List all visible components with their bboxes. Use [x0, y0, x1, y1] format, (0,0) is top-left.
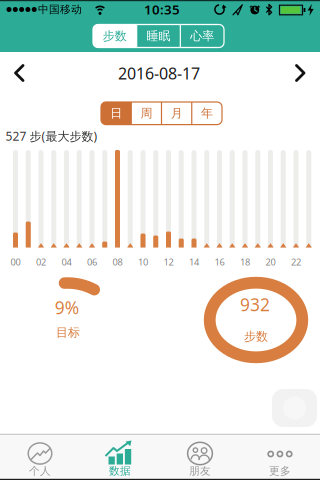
staticText: 数据	[109, 464, 131, 477]
staticText: 16	[214, 256, 224, 268]
button[interactable]: 周	[131, 102, 161, 125]
staticText: 9%	[55, 296, 79, 319]
staticText: 年	[201, 106, 213, 121]
button[interactable]: 数据	[80, 434, 160, 479]
staticText: 22	[291, 256, 301, 268]
staticText: 10:35	[144, 0, 180, 18]
staticText: 目标	[56, 325, 80, 340]
staticText: 14	[189, 256, 199, 268]
staticText: 20	[265, 256, 275, 268]
staticText: 心率	[190, 29, 214, 43]
staticText: 睡眠	[146, 29, 170, 43]
button[interactable]: 日	[101, 102, 131, 125]
staticText: 步数	[244, 329, 268, 344]
button[interactable]	[289, 62, 311, 84]
button[interactable]: 心率	[180, 24, 224, 47]
staticText: 10	[138, 256, 148, 268]
staticText: 日	[110, 106, 122, 121]
staticText: 个人	[29, 464, 51, 477]
staticText: 月	[171, 106, 183, 121]
staticText: 527 步(最大步数)	[5, 128, 97, 144]
button[interactable]: 个人	[0, 434, 80, 479]
staticText: 18	[240, 256, 250, 268]
staticText: 更多	[269, 464, 291, 477]
staticText: 00	[10, 256, 20, 268]
staticText: 08	[112, 256, 122, 268]
staticText: 步数	[103, 29, 127, 43]
staticText: 12	[163, 256, 173, 268]
staticText: 周	[140, 106, 152, 121]
button[interactable]: 更多	[240, 434, 320, 479]
staticText: 932	[240, 293, 270, 316]
button[interactable]: 朋友	[160, 434, 240, 479]
staticText: 06	[87, 256, 97, 268]
staticText: 中国移动	[38, 3, 82, 16]
button[interactable]: 步数	[93, 24, 137, 47]
staticText: 04	[61, 256, 71, 268]
staticText: 2016-08-17	[118, 63, 200, 84]
button[interactable]	[272, 389, 317, 427]
button[interactable]: 月	[161, 102, 192, 125]
button[interactable]: 年	[192, 102, 222, 125]
staticText: 朋友	[189, 464, 211, 477]
button[interactable]: 睡眠	[137, 24, 180, 47]
button[interactable]	[8, 62, 30, 84]
staticText: 02	[36, 256, 46, 268]
